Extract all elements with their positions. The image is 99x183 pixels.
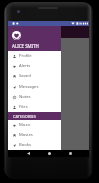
button[interactable]: Recent apps xyxy=(66,150,74,157)
button[interactable]: Alerts xyxy=(8,61,61,71)
button[interactable]: Movies xyxy=(8,130,61,140)
staticText: Notes xyxy=(19,94,31,100)
staticText: Movies xyxy=(19,132,33,138)
button[interactable]: Books xyxy=(8,140,61,150)
button[interactable]: Back xyxy=(24,150,32,157)
staticText: Messages xyxy=(19,84,39,90)
button[interactable]: Music xyxy=(8,120,61,130)
staticText: Alerts xyxy=(19,63,31,69)
staticText: Files xyxy=(19,104,28,110)
staticText: CATEGORIES xyxy=(13,114,36,119)
button[interactable]: Home xyxy=(45,150,53,157)
staticText: Music xyxy=(19,122,31,128)
staticText: ALICE SMITH xyxy=(12,43,39,49)
button[interactable]: Files xyxy=(8,102,61,112)
button[interactable]: Messages xyxy=(8,82,61,92)
button[interactable]: Notes xyxy=(8,92,61,102)
button[interactable]: Saved xyxy=(8,71,61,81)
button[interactable]: Profile xyxy=(8,51,61,61)
staticText: Saved xyxy=(19,73,31,79)
staticText: Books xyxy=(19,142,32,148)
staticText: Profile xyxy=(19,53,32,59)
